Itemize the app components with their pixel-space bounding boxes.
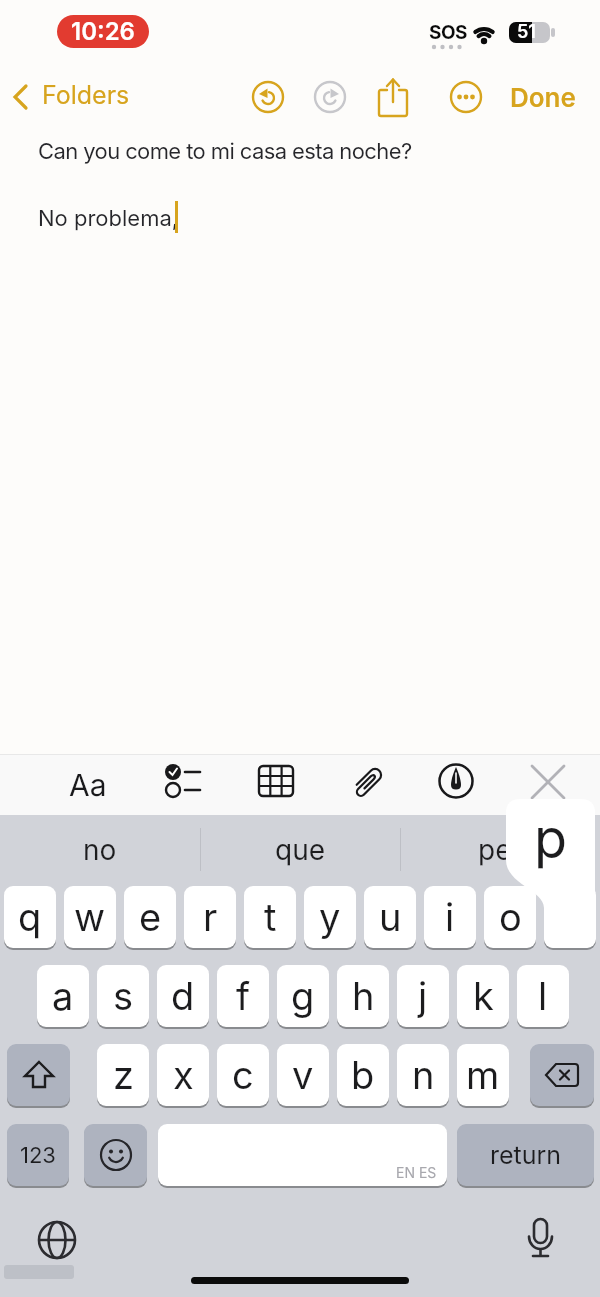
button[interactable]: no	[0, 815, 200, 885]
staticText: t	[264, 894, 277, 940]
staticText: u	[379, 894, 402, 940]
staticText: Folders	[42, 80, 130, 110]
button[interactable]: b	[337, 1044, 389, 1106]
staticText: Done	[510, 82, 576, 113]
button[interactable]	[436, 757, 478, 803]
button[interactable]: per	[400, 815, 600, 885]
staticText: o	[499, 894, 522, 940]
staticText: que	[275, 833, 326, 867]
button[interactable]	[528, 762, 568, 804]
button[interactable]	[376, 76, 410, 118]
staticText: r	[203, 894, 218, 940]
button[interactable]: u	[364, 886, 416, 948]
button[interactable]: Aa	[58, 764, 118, 806]
button[interactable]	[348, 759, 388, 805]
staticText: Can you come to mi casa esta noche?	[38, 138, 412, 165]
button[interactable]: EN ES	[158, 1124, 447, 1186]
button[interactable]	[313, 80, 347, 114]
button[interactable]	[163, 758, 205, 804]
button[interactable]: g	[277, 965, 329, 1027]
staticText: Aa	[69, 767, 107, 803]
button[interactable]: l	[517, 965, 569, 1027]
button[interactable]: v	[277, 1044, 329, 1106]
button[interactable]: r	[184, 886, 236, 948]
button[interactable]: a	[37, 965, 89, 1027]
button[interactable]: h	[337, 965, 389, 1027]
button[interactable]: q	[4, 886, 56, 948]
button[interactable]: t	[244, 886, 296, 948]
button[interactable]: k	[457, 965, 509, 1027]
staticText: z	[113, 1052, 134, 1098]
button[interactable]: 10:26	[57, 15, 149, 48]
staticText: c	[232, 1052, 254, 1098]
button[interactable]: w	[64, 886, 116, 948]
button[interactable]: Done	[505, 80, 580, 114]
button[interactable]	[84, 1124, 147, 1186]
staticText: per	[478, 833, 523, 867]
staticText: No problema,	[38, 205, 179, 232]
staticText: m	[466, 1052, 500, 1098]
staticText: y	[319, 894, 341, 940]
staticText: 123	[20, 1142, 56, 1169]
staticText: s	[113, 973, 134, 1019]
button[interactable]	[38, 1220, 78, 1260]
button[interactable]	[7, 1044, 70, 1106]
staticText: w	[74, 894, 106, 940]
staticText: q	[18, 894, 42, 940]
button[interactable]	[530, 1044, 594, 1106]
staticText: e	[139, 894, 162, 940]
button[interactable]: x	[157, 1044, 209, 1106]
button[interactable]: f	[217, 965, 269, 1027]
staticText: g	[291, 973, 315, 1019]
button[interactable]	[251, 80, 285, 114]
button[interactable]: m	[457, 1044, 509, 1106]
staticText: a	[52, 973, 74, 1019]
button[interactable]: Folders	[8, 78, 138, 116]
button[interactable]: j	[397, 965, 449, 1027]
staticText: b	[351, 1052, 375, 1098]
button[interactable]: n	[397, 1044, 449, 1106]
button[interactable]: e	[124, 886, 176, 948]
staticText: p	[534, 806, 568, 871]
button[interactable]	[522, 1217, 558, 1263]
staticText: k	[473, 973, 494, 1019]
staticText: j	[418, 973, 428, 1019]
button[interactable]: 123	[7, 1124, 69, 1186]
staticText: i	[445, 894, 455, 940]
button[interactable]: c	[217, 1044, 269, 1106]
button[interactable]	[449, 80, 483, 114]
button[interactable]: z	[97, 1044, 149, 1106]
staticText: v	[292, 1052, 314, 1098]
staticText: 10:26	[71, 17, 135, 46]
staticText: f	[236, 973, 251, 1019]
staticText: l	[538, 973, 548, 1019]
staticText: no	[83, 833, 117, 867]
button[interactable]: o	[484, 886, 536, 948]
staticText: h	[352, 973, 375, 1019]
staticText: SOS	[429, 21, 468, 44]
button[interactable]	[256, 760, 296, 802]
staticText: return	[490, 1140, 562, 1170]
button[interactable]: p	[544, 886, 596, 948]
button[interactable]: y	[304, 886, 356, 948]
staticText: d	[171, 973, 195, 1019]
button[interactable]: d	[157, 965, 209, 1027]
staticText: x	[173, 1052, 194, 1098]
staticText: EN ES	[396, 1164, 437, 1181]
staticText: n	[412, 1052, 435, 1098]
button[interactable]: i	[424, 886, 476, 948]
button[interactable]: que	[200, 815, 400, 885]
staticText: 51	[517, 21, 536, 42]
button[interactable]: s	[97, 965, 149, 1027]
button[interactable]: return	[457, 1124, 594, 1186]
